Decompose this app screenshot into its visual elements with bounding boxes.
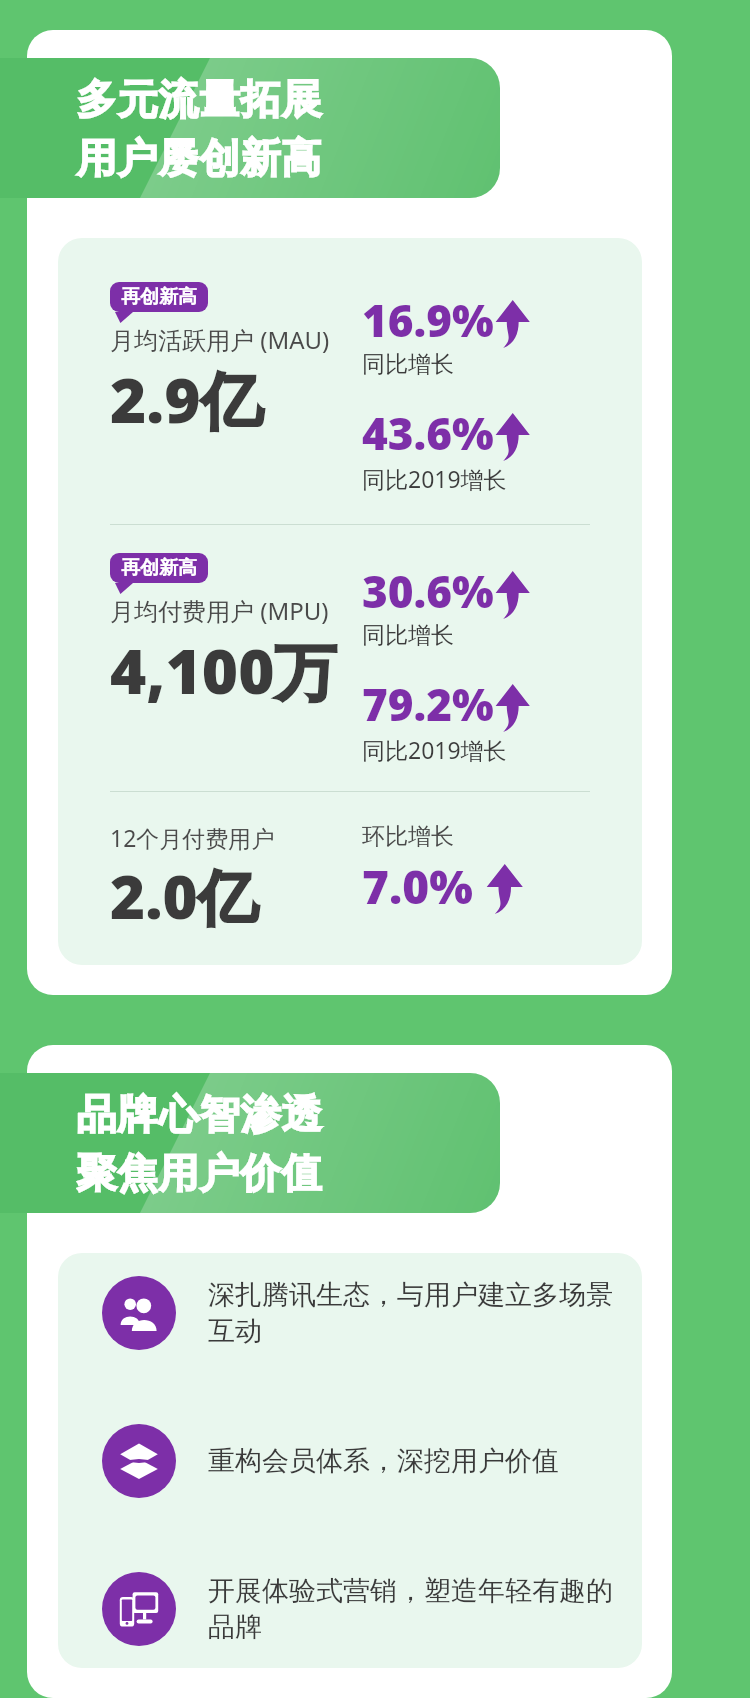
staticText: 月均付费用户 (MPU)	[110, 594, 329, 627]
button[interactable]: Audience	[102, 1276, 622, 1350]
staticText: 79.2%	[362, 674, 494, 734]
staticText: 开展体验式营销，塑造年轻有趣的品牌	[208, 1574, 622, 1644]
staticText: 同比增长	[362, 621, 454, 650]
other: Membership	[102, 1424, 176, 1498]
staticText: 同比2019增长	[362, 734, 507, 765]
staticText: 用户屡创新高	[76, 133, 322, 183]
staticText: 43.6%	[362, 403, 494, 463]
staticText: 品牌心智渗透	[76, 1089, 322, 1139]
staticText: 聚焦用户价值	[76, 1148, 322, 1198]
staticText: 月均活跃用户 (MAU)	[110, 323, 330, 356]
button[interactable]: Membership	[102, 1424, 622, 1498]
staticText: 12个月付费用户	[110, 822, 275, 853]
staticText: 深扎腾讯生态，与用户建立多场景互动	[208, 1278, 622, 1348]
staticText: 再创新高	[121, 556, 197, 580]
staticText: 同比2019增长	[362, 463, 507, 494]
staticText: 再创新高	[121, 285, 197, 309]
other: Devices	[102, 1572, 176, 1646]
other: Audience	[102, 1276, 176, 1350]
staticText: 16.9%	[362, 290, 494, 350]
staticText: 2.9亿	[110, 357, 263, 442]
staticText: 2.0亿	[110, 855, 258, 937]
staticText: 30.6%	[362, 561, 494, 621]
staticText: 重构会员体系，深挖用户价值	[208, 1444, 559, 1478]
staticText: 多元流量拓展	[76, 74, 322, 124]
staticText: 同比增长	[362, 350, 454, 379]
staticText: 环比增长	[362, 822, 454, 851]
staticText: 4,100万	[110, 628, 337, 713]
button[interactable]: Devices	[102, 1572, 622, 1646]
staticText: 7.0%	[362, 855, 473, 918]
